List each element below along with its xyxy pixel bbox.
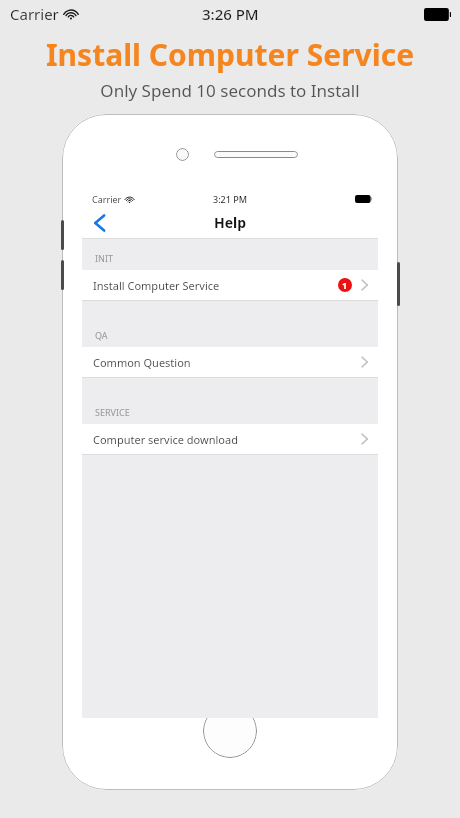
staticText: 1 — [342, 279, 348, 291]
staticText: Install Computer Service — [0, 34, 460, 75]
staticText: 3:21 PM — [213, 193, 247, 205]
button[interactable]: Common Question — [82, 347, 378, 377]
staticText: 3:26 PM — [202, 4, 259, 24]
staticText: QA — [95, 329, 108, 341]
staticText: SERVICE — [95, 406, 130, 418]
staticText: Carrier — [10, 4, 59, 24]
staticText: Carrier — [92, 193, 122, 205]
staticText: Computer service download — [93, 432, 361, 447]
staticText: Help — [214, 213, 247, 232]
button[interactable]: Install Computer Service — [82, 270, 378, 300]
staticText: INIT — [95, 252, 113, 264]
button[interactable]: Computer service download — [82, 424, 378, 454]
staticText: Install Computer Service — [93, 278, 338, 293]
staticText: Only Spend 10 seconds to Install — [0, 79, 460, 102]
staticText: Common Question — [93, 355, 361, 370]
button[interactable]: Back — [82, 207, 116, 238]
